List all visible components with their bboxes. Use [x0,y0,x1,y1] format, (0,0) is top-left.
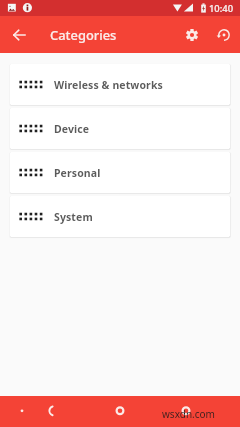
button[interactable]: History [212,23,236,47]
button[interactable]: Back [44,402,64,422]
staticText: System [54,210,93,224]
staticText: 10:40 [209,2,234,15]
button[interactable]: Home [110,402,130,422]
button[interactable]: Personal [10,152,230,193]
staticText: Wireless & networks [54,78,163,92]
staticText: wsxdn.com [162,407,215,421]
staticText: Personal [54,166,101,180]
staticText: Device [54,122,90,136]
button[interactable]: Wireless & networks [10,64,230,105]
staticText: Categories [50,26,117,44]
button[interactable]: Device [10,108,230,149]
button[interactable]: Settings [180,23,204,47]
button[interactable]: Back [7,23,31,47]
button[interactable]: Menu [12,402,32,422]
button[interactable]: System [10,196,230,237]
button[interactable]: Recents [176,402,196,422]
